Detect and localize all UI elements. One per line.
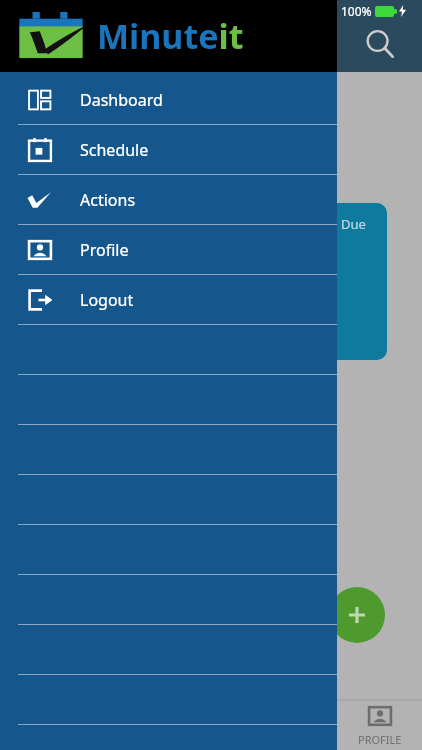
staticText: 100%: [341, 3, 372, 19]
button[interactable]: Actions: [0, 175, 337, 225]
button[interactable]: [0, 575, 337, 625]
staticText: Profile: [80, 239, 129, 261]
button[interactable]: Search: [358, 22, 402, 66]
button[interactable]: Schedule: [0, 125, 337, 175]
staticText: PROFILE: [358, 732, 402, 747]
button[interactable]: Profile: [0, 225, 337, 275]
button[interactable]: Logout: [0, 275, 337, 325]
staticText: Dashboard: [80, 89, 163, 111]
button[interactable]: [0, 425, 337, 475]
staticText: Minuteit: [97, 13, 244, 59]
button[interactable]: [0, 625, 337, 675]
button[interactable]: Dashboard: [0, 75, 337, 125]
button[interactable]: [0, 375, 337, 425]
button[interactable]: [0, 525, 337, 575]
button[interactable]: [0, 675, 337, 725]
button[interactable]: PROFILE: [337, 700, 422, 750]
button[interactable]: Total Due: [300, 203, 387, 360]
staticText: Schedule: [80, 139, 149, 161]
button[interactable]: Add: [329, 587, 385, 643]
button[interactable]: [0, 475, 337, 525]
staticText: Logout: [80, 289, 134, 311]
button[interactable]: [0, 325, 337, 375]
staticText: Actions: [80, 189, 136, 211]
staticText: Total Due: [308, 215, 366, 233]
